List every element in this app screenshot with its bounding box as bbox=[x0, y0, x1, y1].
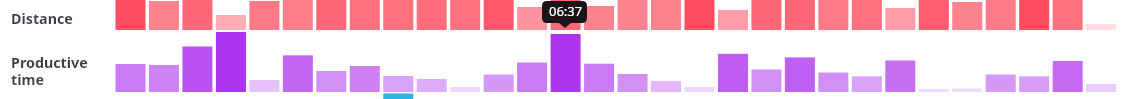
staticText: Distance bbox=[11, 9, 73, 28]
staticText: 06:37 bbox=[549, 2, 583, 20]
staticText: Productive time bbox=[11, 53, 88, 89]
